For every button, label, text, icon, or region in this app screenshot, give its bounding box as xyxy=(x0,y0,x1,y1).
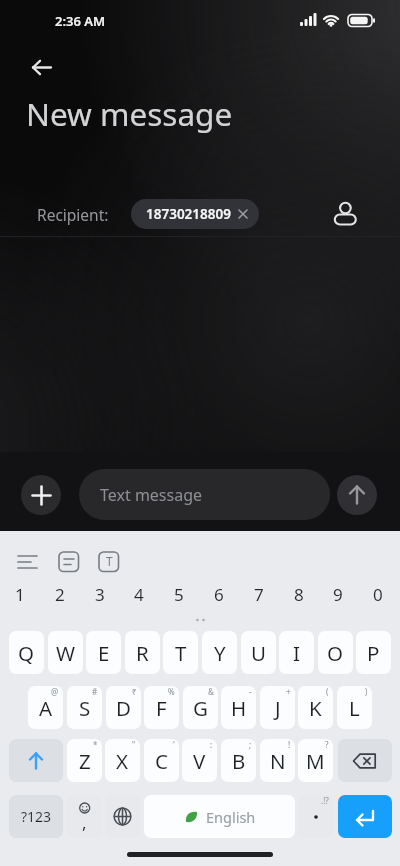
button[interactable]: ?123 xyxy=(9,795,63,838)
staticText: ' xyxy=(173,739,175,750)
button[interactable]: Y xyxy=(202,631,237,674)
staticText: B xyxy=(232,747,246,775)
staticText: Y xyxy=(214,639,226,667)
button[interactable]: 8 xyxy=(285,580,313,608)
button[interactable]: 9 xyxy=(324,580,352,608)
button[interactable] xyxy=(338,739,392,782)
staticText: New message xyxy=(26,92,233,135)
button[interactable]: B xyxy=(221,739,256,782)
staticText: C xyxy=(155,747,168,775)
staticText: D xyxy=(116,694,131,722)
staticText: 0 xyxy=(373,583,383,606)
button[interactable] xyxy=(51,543,87,579)
button[interactable]: 7 xyxy=(245,580,273,608)
button[interactable] xyxy=(21,475,61,515)
button[interactable]: S xyxy=(67,686,102,729)
staticText: 9 xyxy=(333,583,343,606)
button[interactable]: English xyxy=(144,795,295,838)
button[interactable]: .!? xyxy=(298,795,333,838)
button[interactable] xyxy=(105,795,140,838)
button[interactable]: W xyxy=(48,631,83,674)
button[interactable]: P xyxy=(356,631,391,674)
staticText: " xyxy=(132,739,136,750)
button[interactable]: M xyxy=(298,739,333,782)
staticText: E xyxy=(98,639,110,667)
staticText: Recipient: xyxy=(37,204,109,225)
button[interactable]: O xyxy=(318,631,353,674)
button[interactable]: 18730218809 xyxy=(131,199,259,229)
staticText: * xyxy=(93,739,98,750)
button[interactable]: Text message xyxy=(79,469,330,520)
button[interactable]: 4 xyxy=(125,580,153,608)
button[interactable]: I xyxy=(279,631,314,674)
staticText: H xyxy=(231,694,247,722)
button[interactable]: H xyxy=(221,686,256,729)
button[interactable]: D xyxy=(106,686,141,729)
staticText: @ xyxy=(51,686,59,697)
staticText: 7 xyxy=(254,583,264,606)
button[interactable]: 1 xyxy=(6,580,34,608)
button[interactable]: L xyxy=(337,686,372,729)
button[interactable]: T xyxy=(163,631,198,674)
button[interactable]: V xyxy=(182,739,217,782)
button[interactable]: J xyxy=(260,686,295,729)
staticText: J xyxy=(275,694,281,722)
staticText: Text message xyxy=(100,484,203,506)
staticText: G xyxy=(193,694,208,722)
staticText: & xyxy=(208,686,214,697)
staticText: 4 xyxy=(134,583,144,606)
staticText: ( xyxy=(326,686,329,697)
staticText: ; xyxy=(249,739,252,750)
button[interactable]: G xyxy=(183,686,218,729)
button[interactable] xyxy=(331,201,359,231)
button[interactable]: F xyxy=(144,686,179,729)
button[interactable] xyxy=(10,543,46,579)
button[interactable]: A xyxy=(28,686,63,729)
button[interactable]: , xyxy=(67,795,102,838)
staticText: , xyxy=(82,811,87,834)
staticText: L xyxy=(349,694,360,722)
staticText: T xyxy=(175,639,187,667)
staticText: 1 xyxy=(15,583,25,606)
staticText: ) xyxy=(365,686,368,697)
button[interactable]: 0 xyxy=(364,580,392,608)
button[interactable]: 3 xyxy=(86,580,114,608)
button[interactable]: Z xyxy=(67,739,102,782)
staticText: 18730218809 xyxy=(146,205,231,223)
staticText: English xyxy=(206,807,256,827)
staticText: ₹ xyxy=(132,686,137,697)
staticText: T xyxy=(106,553,113,569)
button[interactable]: N xyxy=(260,739,295,782)
staticText: % xyxy=(168,686,175,697)
staticText: X xyxy=(116,747,129,775)
staticText: + xyxy=(286,686,291,697)
staticText: K xyxy=(309,694,322,722)
button[interactable]: T xyxy=(91,543,127,579)
staticText: A xyxy=(39,694,53,722)
staticText: 2:36 AM xyxy=(55,12,106,30)
button[interactable]: 6 xyxy=(205,580,233,608)
button[interactable] xyxy=(338,795,392,838)
button[interactable]: C xyxy=(144,739,179,782)
button[interactable]: U xyxy=(241,631,276,674)
button[interactable]: X xyxy=(105,739,140,782)
button[interactable]: K xyxy=(298,686,333,729)
button[interactable] xyxy=(24,53,60,83)
staticText: I xyxy=(293,639,300,667)
button[interactable]: Q xyxy=(9,631,44,674)
staticText: V xyxy=(193,747,206,775)
button[interactable]: E xyxy=(86,631,121,674)
staticText: 3 xyxy=(95,583,105,606)
button[interactable] xyxy=(337,475,377,515)
staticText: Q xyxy=(18,639,35,667)
staticText: ?123 xyxy=(21,807,52,826)
button[interactable] xyxy=(9,739,63,782)
button[interactable]: R xyxy=(125,631,160,674)
staticText: ! xyxy=(288,739,291,750)
staticText: W xyxy=(56,639,76,667)
staticText: F xyxy=(156,694,167,722)
staticText: M xyxy=(306,747,325,775)
button[interactable]: 5 xyxy=(165,580,193,608)
staticText: O xyxy=(327,639,344,667)
button[interactable]: 2 xyxy=(46,580,74,608)
